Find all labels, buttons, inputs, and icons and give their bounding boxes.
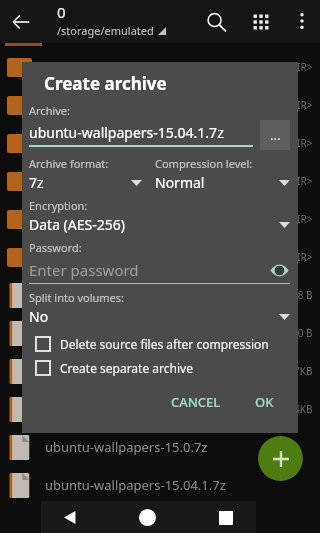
staticText: Archive: — [29, 103, 71, 118]
button[interactable]: Grid view — [249, 10, 273, 34]
staticText: 7z — [29, 173, 131, 192]
button[interactable]: ubuntu-wallpapers-15.04.1.7z — [0, 466, 320, 504]
button[interactable]: ubuntu-wallpapers-15.0.7z — [0, 428, 320, 466]
staticText: Delete source files after compression — [60, 336, 269, 352]
staticText: Encryption: — [29, 198, 88, 213]
button[interactable]: Home — [138, 508, 157, 527]
staticText: Password: — [29, 240, 82, 255]
button[interactable]: Android — [0, 86, 320, 124]
button[interactable]: Search — [204, 10, 228, 34]
button[interactable]: Create separate archive — [36, 360, 290, 376]
button[interactable]: Delete source files after compression — [36, 336, 290, 352]
button[interactable]: Enter password — [29, 259, 290, 281]
staticText: <DIR> — [284, 60, 313, 74]
staticText: /storage/emulated — [57, 23, 154, 38]
staticText: Normal — [155, 173, 279, 192]
staticText: No — [29, 307, 279, 326]
button[interactable]: More options — [291, 10, 313, 32]
button[interactable]: Music — [0, 314, 320, 352]
button[interactable]: 7z — [29, 173, 146, 192]
staticText: Documents — [45, 210, 284, 228]
staticText: DCIM — [45, 172, 284, 190]
staticText: Enter password — [29, 260, 268, 280]
button[interactable]: Back — [61, 508, 80, 527]
staticText: Music — [45, 324, 292, 342]
staticText: Create separate archive — [60, 360, 193, 376]
button[interactable]: Add — [258, 436, 303, 481]
staticText: Download — [45, 248, 284, 266]
staticText: Audiobooks — [45, 134, 284, 152]
staticText: 0 — [57, 2, 66, 22]
staticText: <DIR> — [284, 212, 313, 226]
button[interactable]: Audiobooks — [0, 124, 320, 162]
staticText: Split into volumes: — [29, 290, 125, 305]
button[interactable]: ubuntu-wallpapers-15.04.1.7z — [29, 123, 253, 147]
staticText: Alarms — [45, 58, 284, 76]
staticText: 7KB — [294, 364, 313, 378]
staticText: <DIR> — [284, 136, 313, 150]
button[interactable]: Data (AES-256) — [29, 215, 290, 234]
staticText: <DIR> — [284, 250, 313, 264]
staticText: Create archive — [44, 72, 167, 95]
button[interactable]: Recent apps — [218, 510, 234, 526]
staticText: ubuntu-wallpapers-15.04.1.7z — [45, 400, 294, 418]
button[interactable]: Back — [8, 9, 34, 35]
staticText: Compression level: — [155, 156, 253, 171]
button[interactable]: No — [29, 307, 290, 326]
staticText: <DIR> — [284, 98, 313, 112]
button[interactable]: Download — [0, 238, 320, 276]
staticText: 90 B — [292, 326, 313, 340]
button[interactable]: Show password — [268, 259, 290, 281]
button[interactable]: Alarms — [0, 48, 320, 86]
button[interactable]: Documents — [0, 200, 320, 238]
button[interactable]: Normal — [155, 173, 290, 192]
staticText: 18 B — [292, 288, 313, 302]
staticText: ubuntu-wallpapers-15.04.1.7z — [45, 476, 313, 494]
button[interactable]: ubuntu-wallpapers-15.04.1.7z — [0, 390, 320, 428]
staticText: 4KB — [294, 402, 313, 416]
button[interactable]: DCIM — [0, 162, 320, 200]
staticText: Android — [45, 96, 284, 114]
staticText: CANCEL — [171, 393, 221, 411]
staticText: Archive format: — [29, 156, 109, 171]
staticText: OK — [255, 393, 274, 411]
staticText: Data (AES-256) — [29, 215, 279, 234]
button[interactable]: Movies — [0, 276, 320, 314]
staticText: ... — [270, 126, 281, 144]
staticText: <DIR> — [284, 174, 313, 188]
staticText: ubuntu-wallpapers-15.0.7z — [45, 362, 294, 380]
staticText: ubuntu-wallpapers-15.04.1.7z — [29, 123, 224, 142]
button[interactable]: Browse — [260, 120, 290, 150]
button[interactable]: ubuntu-wallpapers-15.0.7z — [0, 352, 320, 390]
staticText: ubuntu-wallpapers-15.0.7z — [45, 438, 313, 456]
button[interactable]: CANCEL — [161, 387, 231, 417]
staticText: Movies — [45, 286, 292, 304]
button[interactable]: OK — [245, 387, 284, 417]
